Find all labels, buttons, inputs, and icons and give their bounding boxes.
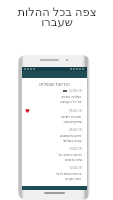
staticText: תזכורת לשיעור [60,114,82,119]
staticText: אל כל הקבוצה [60,99,82,104]
staticText: שהיה בשלישי [63,138,82,143]
staticText: ברכות חמות לרגל [56,171,82,176]
staticText: נשלחה הודעה [61,94,82,99]
staticText: צפה בכל ההלות שעברו [17,4,97,28]
staticText: 05.03.19 [69,109,82,113]
staticText: שינוי בזמנים [65,157,82,162]
staticText: 26.02.19 [69,128,82,132]
staticText: שיתקיים מחר [63,119,82,124]
staticText: החג הקרוב [65,176,82,181]
staticText: 12.02.19 [69,166,82,170]
staticText: הודעה חדשה על [58,152,82,157]
button[interactable]: 12.02.19 [22,166,87,185]
button[interactable]: 26.02.19 [22,128,87,147]
staticText: הודעות שנשלחו [39,81,70,87]
button[interactable]: 12.03.19 [22,89,87,108]
button[interactable]: 19.02.19 [22,147,87,166]
button[interactable]: 05.03.19 [22,108,87,128]
staticText: סיכום מהמפגש [60,133,82,138]
staticText: 12.03.19 [69,89,82,93]
staticText: 19.02.19 [69,147,82,151]
